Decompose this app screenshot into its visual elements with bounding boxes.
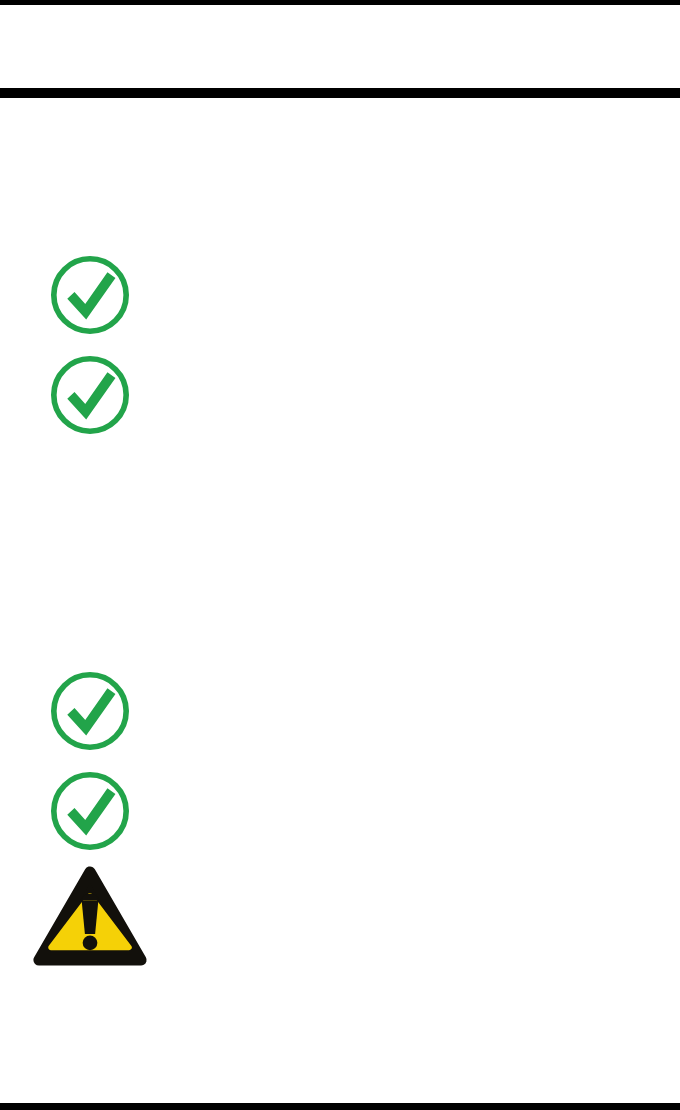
button[interactable]: Check passed xyxy=(51,672,129,750)
button[interactable]: Check passed xyxy=(51,256,129,334)
button[interactable]: Check passed xyxy=(51,772,129,850)
button[interactable]: Check passed xyxy=(51,356,129,434)
button[interactable]: Warning xyxy=(39,872,141,960)
